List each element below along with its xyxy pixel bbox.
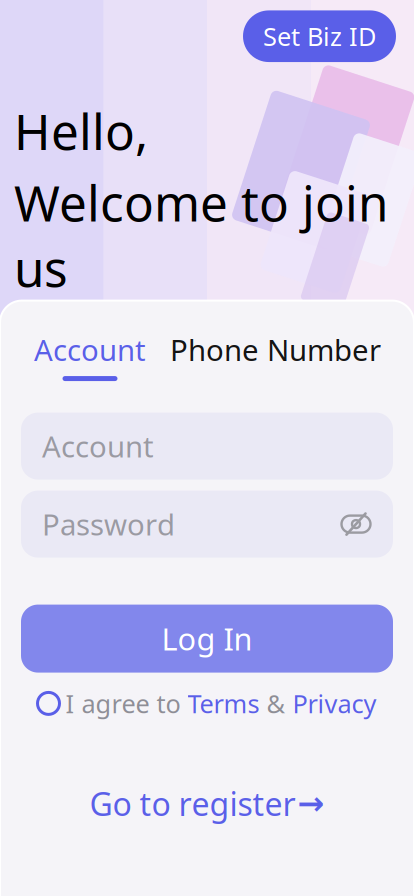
- button[interactable]: Privacy: [292, 687, 376, 720]
- staticText: Phone Number: [170, 330, 381, 369]
- staticText: Privacy: [292, 687, 376, 720]
- button[interactable]: Phone Number: [170, 330, 381, 381]
- staticText: Account: [42, 427, 154, 466]
- button[interactable]: Set Biz ID: [243, 10, 396, 62]
- button[interactable]: Log In: [21, 605, 393, 673]
- staticText: Log In: [161, 618, 252, 659]
- staticText: Go to register: [89, 782, 295, 825]
- staticText: Welcome to join us: [14, 170, 388, 301]
- staticText: Terms: [187, 687, 259, 720]
- staticText: →: [297, 785, 324, 822]
- button[interactable]: Account: [21, 413, 393, 480]
- staticText: Set Biz ID: [263, 19, 376, 53]
- staticText: Hello,: [14, 98, 148, 164]
- button[interactable]: Terms: [187, 687, 259, 720]
- button[interactable]: Go to register: [89, 782, 324, 825]
- staticText: &: [259, 687, 292, 720]
- button[interactable]: Account: [34, 330, 146, 381]
- button[interactable]: Agree to terms checkbox: [37, 692, 65, 714]
- button[interactable]: Password: [21, 491, 393, 558]
- staticText: Account: [34, 330, 146, 369]
- staticText: I agree to: [65, 687, 187, 720]
- staticText: Password: [42, 505, 175, 544]
